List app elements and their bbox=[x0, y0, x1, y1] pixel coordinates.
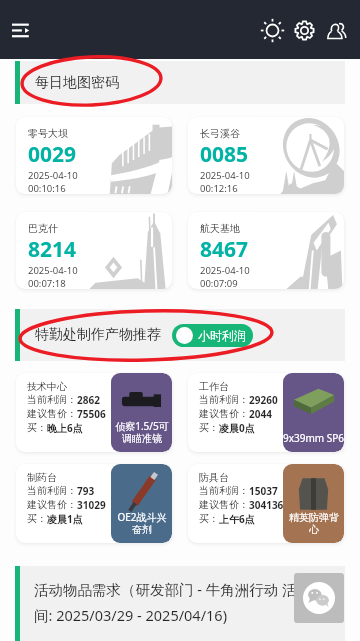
staticText: 00:07:09 bbox=[200, 277, 238, 289]
staticText: 2025-04-10 bbox=[200, 264, 250, 277]
staticText: 31029 bbox=[77, 498, 106, 512]
button[interactable]: 制药台 bbox=[16, 464, 172, 543]
staticText: 建议售价： bbox=[199, 498, 249, 511]
staticText: 凌晨0点 bbox=[219, 421, 255, 435]
staticText: 2025-04-10 bbox=[28, 264, 78, 277]
staticText: 建议售价： bbox=[27, 498, 77, 511]
staticText: 当前利润： bbox=[199, 393, 249, 406]
button[interactable]: 航天基地 bbox=[188, 212, 344, 289]
staticText: 上午6点 bbox=[219, 512, 255, 526]
staticText: 晚上6点 bbox=[47, 421, 83, 435]
button[interactable]: Share to WeChat bbox=[294, 573, 344, 623]
staticText: 买： bbox=[27, 512, 47, 525]
staticText: 买： bbox=[199, 512, 219, 525]
button[interactable]: 长弓溪谷 bbox=[188, 117, 344, 194]
staticText: 买： bbox=[27, 421, 47, 434]
staticText: 零号大坝 bbox=[28, 127, 68, 140]
button[interactable]: 防具台 bbox=[188, 464, 344, 543]
staticText: 当前利润： bbox=[27, 393, 77, 406]
staticText: 0085 bbox=[200, 140, 249, 169]
staticText: 2025-04-10 bbox=[28, 169, 78, 182]
staticText: 活动物品需求（研发部门 - 牛角洲行动 活动时 bbox=[34, 579, 326, 599]
staticText: 8467 bbox=[200, 235, 249, 264]
staticText: 当前利润： bbox=[27, 484, 77, 497]
staticText: 小时利润 bbox=[198, 328, 246, 343]
staticText: 精英防弹背心 bbox=[285, 511, 343, 536]
staticText: 买： bbox=[199, 421, 219, 434]
button[interactable]: 巴克什 bbox=[16, 212, 172, 289]
staticText: 航天基地 bbox=[200, 222, 240, 235]
staticText: 9x39mm SP6 bbox=[283, 431, 344, 445]
staticText: 2862 bbox=[77, 393, 100, 407]
staticText: 每日地图密码 bbox=[35, 74, 119, 92]
staticText: 技术中心 bbox=[27, 380, 67, 393]
button[interactable]: 技术中心 bbox=[16, 373, 172, 452]
staticText: 特勤处制作产物推荐 bbox=[35, 326, 161, 344]
staticText: 防具台 bbox=[199, 471, 229, 484]
staticText: 建议售价： bbox=[199, 407, 249, 420]
staticText: 2044 bbox=[249, 407, 272, 421]
button[interactable]: 零号大坝 bbox=[16, 117, 172, 194]
button[interactable]: Brightness bbox=[256, 14, 288, 46]
staticText: 凌晨1点 bbox=[47, 512, 83, 526]
staticText: 侦察1.5/5可调瞄准镜 bbox=[113, 419, 171, 445]
staticText: 8214 bbox=[28, 235, 77, 264]
staticText: 建议售价： bbox=[27, 407, 77, 420]
staticText: 0029 bbox=[28, 140, 77, 169]
staticText: 00:12:16 bbox=[200, 182, 238, 194]
staticText: 长弓溪谷 bbox=[200, 127, 240, 140]
staticText: 75506 bbox=[77, 407, 106, 421]
staticText: 当前利润： bbox=[199, 484, 249, 497]
button[interactable]: 工作台 bbox=[188, 373, 344, 452]
staticText: 29260 bbox=[249, 393, 278, 407]
button[interactable]: Menu bbox=[2, 10, 42, 50]
staticText: 工作台 bbox=[199, 380, 229, 393]
staticText: 304136 bbox=[249, 498, 284, 512]
staticText: 00:10:16 bbox=[28, 182, 66, 194]
button[interactable]: 小时利润 bbox=[172, 324, 253, 347]
staticText: 15037 bbox=[249, 484, 278, 498]
staticText: 制药台 bbox=[27, 471, 57, 484]
staticText: 00:07:18 bbox=[28, 277, 66, 289]
staticText: 间: 2025/03/29 - 2025/04/16) bbox=[34, 605, 227, 625]
staticText: 793 bbox=[77, 484, 95, 498]
staticText: OE2战斗兴奋剂 bbox=[113, 510, 171, 536]
button[interactable]: Account bbox=[320, 14, 352, 46]
button[interactable]: Settings bbox=[288, 14, 320, 46]
staticText: 巴克什 bbox=[28, 222, 58, 235]
staticText: 2025-04-10 bbox=[200, 169, 250, 182]
